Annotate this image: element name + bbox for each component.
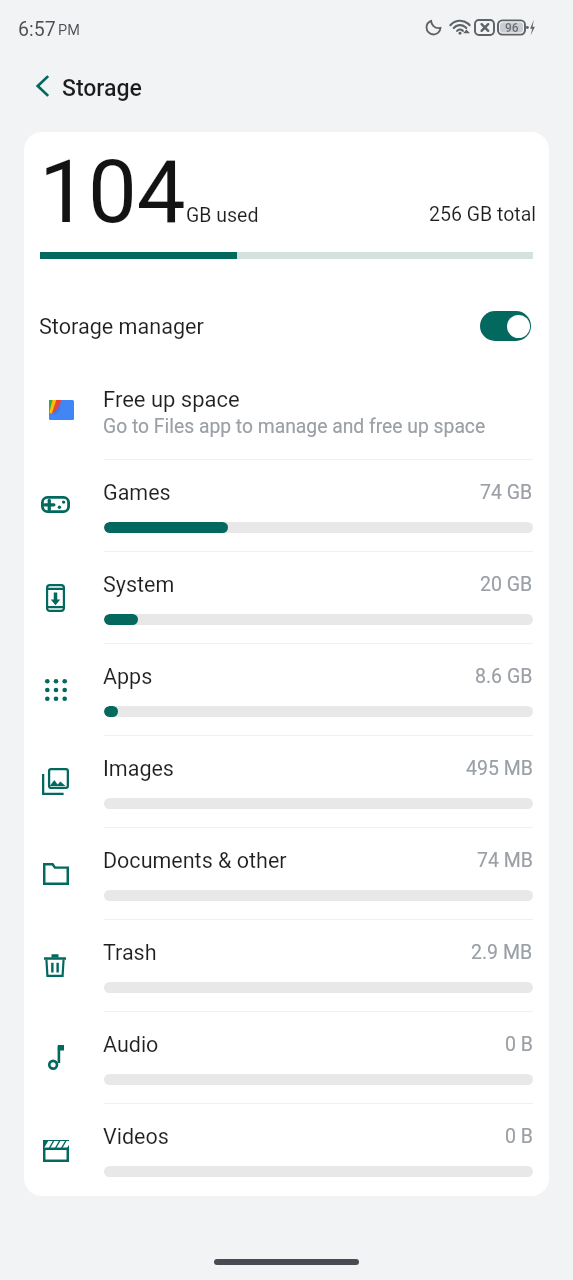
staticText: Storage manager (39, 314, 204, 339)
staticText: Storage (62, 75, 142, 102)
staticText: Free up space (103, 387, 240, 413)
staticText: 8.6 GB (475, 665, 533, 688)
button[interactable]: Games (24, 459, 549, 551)
staticText: 6:57 (18, 18, 56, 41)
button[interactable]: Storage manager (24, 292, 549, 346)
staticText: System (103, 572, 175, 597)
button[interactable]: Audio (24, 1011, 549, 1103)
staticText: 74 GB (480, 481, 533, 504)
staticText: 0 B (505, 1033, 533, 1056)
staticText: 495 MB (466, 757, 533, 780)
staticText: Images (103, 756, 174, 781)
button[interactable]: Trash (24, 919, 549, 1011)
staticText: 2.9 MB (471, 941, 533, 964)
staticText: 20 GB (480, 573, 533, 596)
staticText: Games (103, 480, 171, 505)
button[interactable]: System (24, 551, 549, 643)
staticText: GB used (186, 204, 259, 227)
staticText: 256 GB total (429, 203, 537, 226)
staticText: PM (58, 22, 80, 39)
staticText: Trash (103, 940, 157, 965)
staticText: 0 B (505, 1125, 533, 1148)
staticText: 74 MB (477, 849, 533, 872)
staticText: Documents & other (103, 848, 287, 873)
staticText: Apps (103, 664, 153, 689)
button[interactable]: Documents & other (24, 827, 549, 919)
staticText: Go to Files app to manage and free up sp… (103, 415, 486, 438)
staticText: 104 (39, 141, 186, 243)
staticText: Videos (103, 1124, 169, 1149)
button[interactable]: Back (25, 67, 63, 105)
button[interactable]: Images (24, 735, 549, 827)
button[interactable]: Free up space (24, 360, 549, 455)
staticText: 96 (505, 21, 519, 35)
button[interactable]: Apps (24, 643, 549, 735)
button[interactable]: Videos (24, 1103, 549, 1195)
staticText: Audio (103, 1032, 159, 1057)
